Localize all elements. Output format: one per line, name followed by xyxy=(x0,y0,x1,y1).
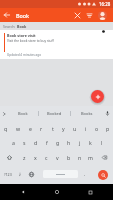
staticText: d xyxy=(34,139,38,146)
button[interactable]: g xyxy=(52,135,63,150)
button[interactable]: Clear search xyxy=(71,9,84,22)
button[interactable]: p xyxy=(102,121,113,135)
staticText: e xyxy=(29,125,32,132)
button[interactable]: q xyxy=(0,121,12,135)
staticText: Book xyxy=(18,111,28,116)
staticText: a xyxy=(12,139,15,146)
staticText: g xyxy=(56,139,60,146)
button[interactable]: o xyxy=(91,121,102,135)
button[interactable]: Recents xyxy=(80,184,100,200)
button[interactable]: v xyxy=(52,150,63,165)
staticText: b xyxy=(67,154,71,161)
button[interactable]: . xyxy=(79,165,91,183)
button[interactable]: c xyxy=(41,150,52,165)
staticText: Search: xyxy=(3,24,17,29)
staticText: j xyxy=(79,139,81,146)
button[interactable]: Book xyxy=(8,106,38,121)
button[interactable]: Books xyxy=(71,106,102,121)
button[interactable]: Search xyxy=(98,170,108,180)
button[interactable]: Add note xyxy=(91,90,104,103)
button[interactable]: Back xyxy=(13,184,33,200)
staticText: w xyxy=(16,125,21,132)
staticText: . xyxy=(84,171,86,178)
staticText: z xyxy=(23,154,26,161)
staticText: n xyxy=(78,154,82,161)
staticText: m xyxy=(88,154,93,161)
button[interactable]: y xyxy=(58,121,69,135)
staticText: l xyxy=(101,139,103,146)
staticText: v xyxy=(56,154,59,161)
staticText: ?123 xyxy=(4,172,12,177)
button[interactable]: Space xyxy=(43,170,78,178)
staticText: y xyxy=(62,125,65,132)
button[interactable]: Filter xyxy=(83,9,96,22)
button[interactable]: x xyxy=(30,150,41,165)
staticText: Visit the book store to buy stuff xyxy=(7,39,54,43)
staticText: c xyxy=(45,154,48,161)
staticText: t xyxy=(52,125,54,132)
button[interactable]: i xyxy=(80,121,91,135)
staticText: q xyxy=(4,125,8,132)
button[interactable]: Booked xyxy=(39,106,70,121)
button[interactable]: h xyxy=(63,135,74,150)
staticText: s xyxy=(23,139,26,146)
staticText: Updated 4 minutes ago xyxy=(7,53,42,57)
staticText: 16:28 xyxy=(99,1,111,7)
button[interactable]: Back xyxy=(0,8,14,22)
button[interactable]: ?123 xyxy=(0,165,15,183)
button[interactable]: n xyxy=(74,150,85,165)
staticText: i xyxy=(85,125,87,132)
button[interactable]: Emoji xyxy=(14,165,26,183)
button[interactable]: Book store visit xyxy=(0,30,113,59)
button[interactable]: f xyxy=(41,135,52,150)
button[interactable]: r xyxy=(36,121,47,135)
button[interactable]: Account xyxy=(98,11,107,20)
button[interactable]: u xyxy=(69,121,80,135)
button[interactable]: m xyxy=(85,150,96,165)
button[interactable]: j xyxy=(74,135,85,150)
staticText: Book xyxy=(17,24,27,29)
staticText: Books xyxy=(81,111,93,116)
staticText: o xyxy=(95,125,99,132)
button[interactable]: a xyxy=(7,135,19,150)
button[interactable]: Change keyboard xyxy=(25,165,37,183)
button[interactable]: Shift xyxy=(0,150,18,165)
button[interactable]: Voice input xyxy=(102,106,113,121)
staticText: u xyxy=(73,125,77,132)
button[interactable]: More suggestions xyxy=(0,106,8,121)
staticText: k xyxy=(89,139,92,146)
button[interactable]: Home xyxy=(47,184,67,200)
staticText: h xyxy=(67,139,71,146)
staticText: p xyxy=(106,125,110,132)
button[interactable]: z xyxy=(18,150,30,165)
staticText: Book store visit xyxy=(7,33,36,38)
button[interactable]: s xyxy=(19,135,30,150)
button[interactable]: l xyxy=(96,135,107,150)
button[interactable]: t xyxy=(47,121,58,135)
staticText: x xyxy=(34,154,37,161)
button[interactable]: w xyxy=(12,121,24,135)
staticText: Book xyxy=(16,12,30,19)
button[interactable]: e xyxy=(24,121,36,135)
button[interactable]: d xyxy=(30,135,41,150)
button[interactable]: b xyxy=(63,150,74,165)
staticText: Booked xyxy=(47,111,62,116)
staticText: r xyxy=(40,125,43,132)
button[interactable]: Backspace xyxy=(96,150,113,165)
staticText: f xyxy=(46,139,48,146)
button[interactable]: k xyxy=(85,135,96,150)
